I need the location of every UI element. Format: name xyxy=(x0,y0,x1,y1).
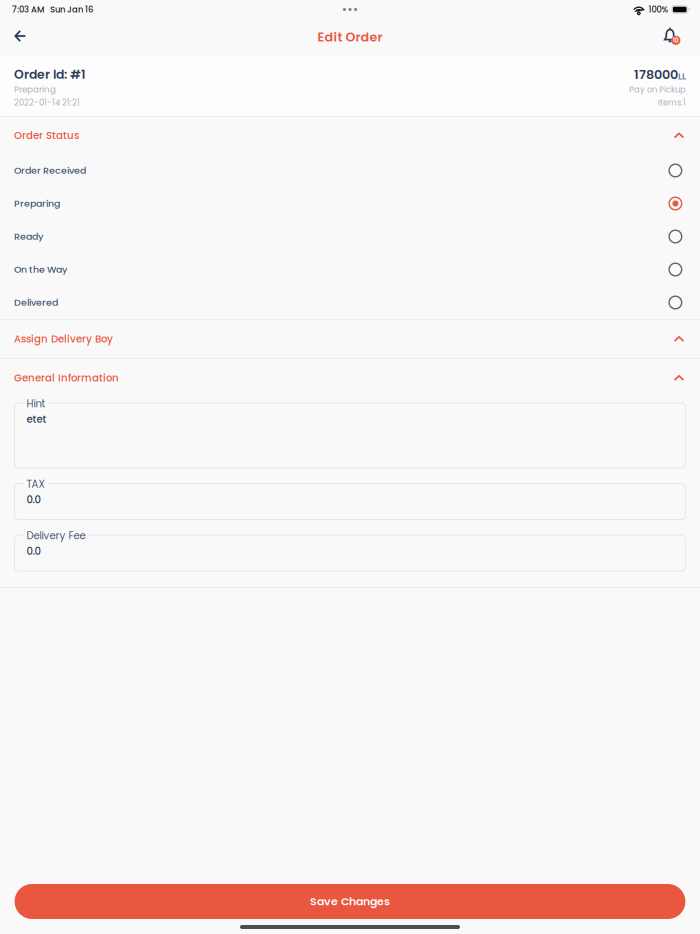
staticText: Preparing xyxy=(14,83,56,95)
staticText: Order Status xyxy=(14,128,79,143)
staticText: Assign Delivery Boy xyxy=(14,332,113,346)
staticText: 0.0 xyxy=(27,544,41,558)
button[interactable]: Ready xyxy=(0,220,700,253)
staticText: Order Received xyxy=(14,164,86,177)
staticText: TAX xyxy=(27,477,45,491)
staticText: Items:1 xyxy=(658,97,686,108)
button[interactable]: Notifications xyxy=(658,19,698,55)
staticText: 178000 xyxy=(634,65,678,83)
staticText: 0.0 xyxy=(27,492,41,507)
button[interactable]: Order Status xyxy=(0,117,700,154)
button[interactable]: Assign Delivery Boy xyxy=(0,320,700,358)
staticText: General Information xyxy=(14,371,119,385)
staticText: Preparing xyxy=(14,197,60,210)
staticText: 2022-01-14 21:21 xyxy=(14,97,80,108)
staticText: Edit Order xyxy=(317,28,382,46)
staticText: Hint xyxy=(27,397,46,411)
staticText: Delivered xyxy=(14,296,58,309)
button[interactable]: Order Received xyxy=(0,154,700,187)
button[interactable]: Delivered xyxy=(0,286,700,319)
button[interactable]: On the Way xyxy=(0,253,700,286)
staticText: Pay on Pickup xyxy=(629,84,686,95)
staticText: 100% xyxy=(648,4,668,15)
staticText: Sun Jan 16 xyxy=(50,4,93,15)
staticText: 7:03 AM xyxy=(12,4,44,15)
staticText: Delivery Fee xyxy=(27,529,86,543)
staticText: etet xyxy=(27,412,47,426)
staticText: Ready xyxy=(14,230,44,243)
staticText: On the Way xyxy=(14,263,68,276)
button[interactable]: General Information xyxy=(0,359,700,403)
button[interactable]: Save Changes xyxy=(15,884,685,919)
staticText: 10 xyxy=(673,36,679,45)
staticText: Save Changes xyxy=(310,894,390,909)
button[interactable]: Preparing xyxy=(0,187,700,220)
staticText: LL xyxy=(678,70,686,83)
button[interactable]: Back xyxy=(2,19,42,55)
staticText: Order Id: #1 xyxy=(14,66,85,83)
